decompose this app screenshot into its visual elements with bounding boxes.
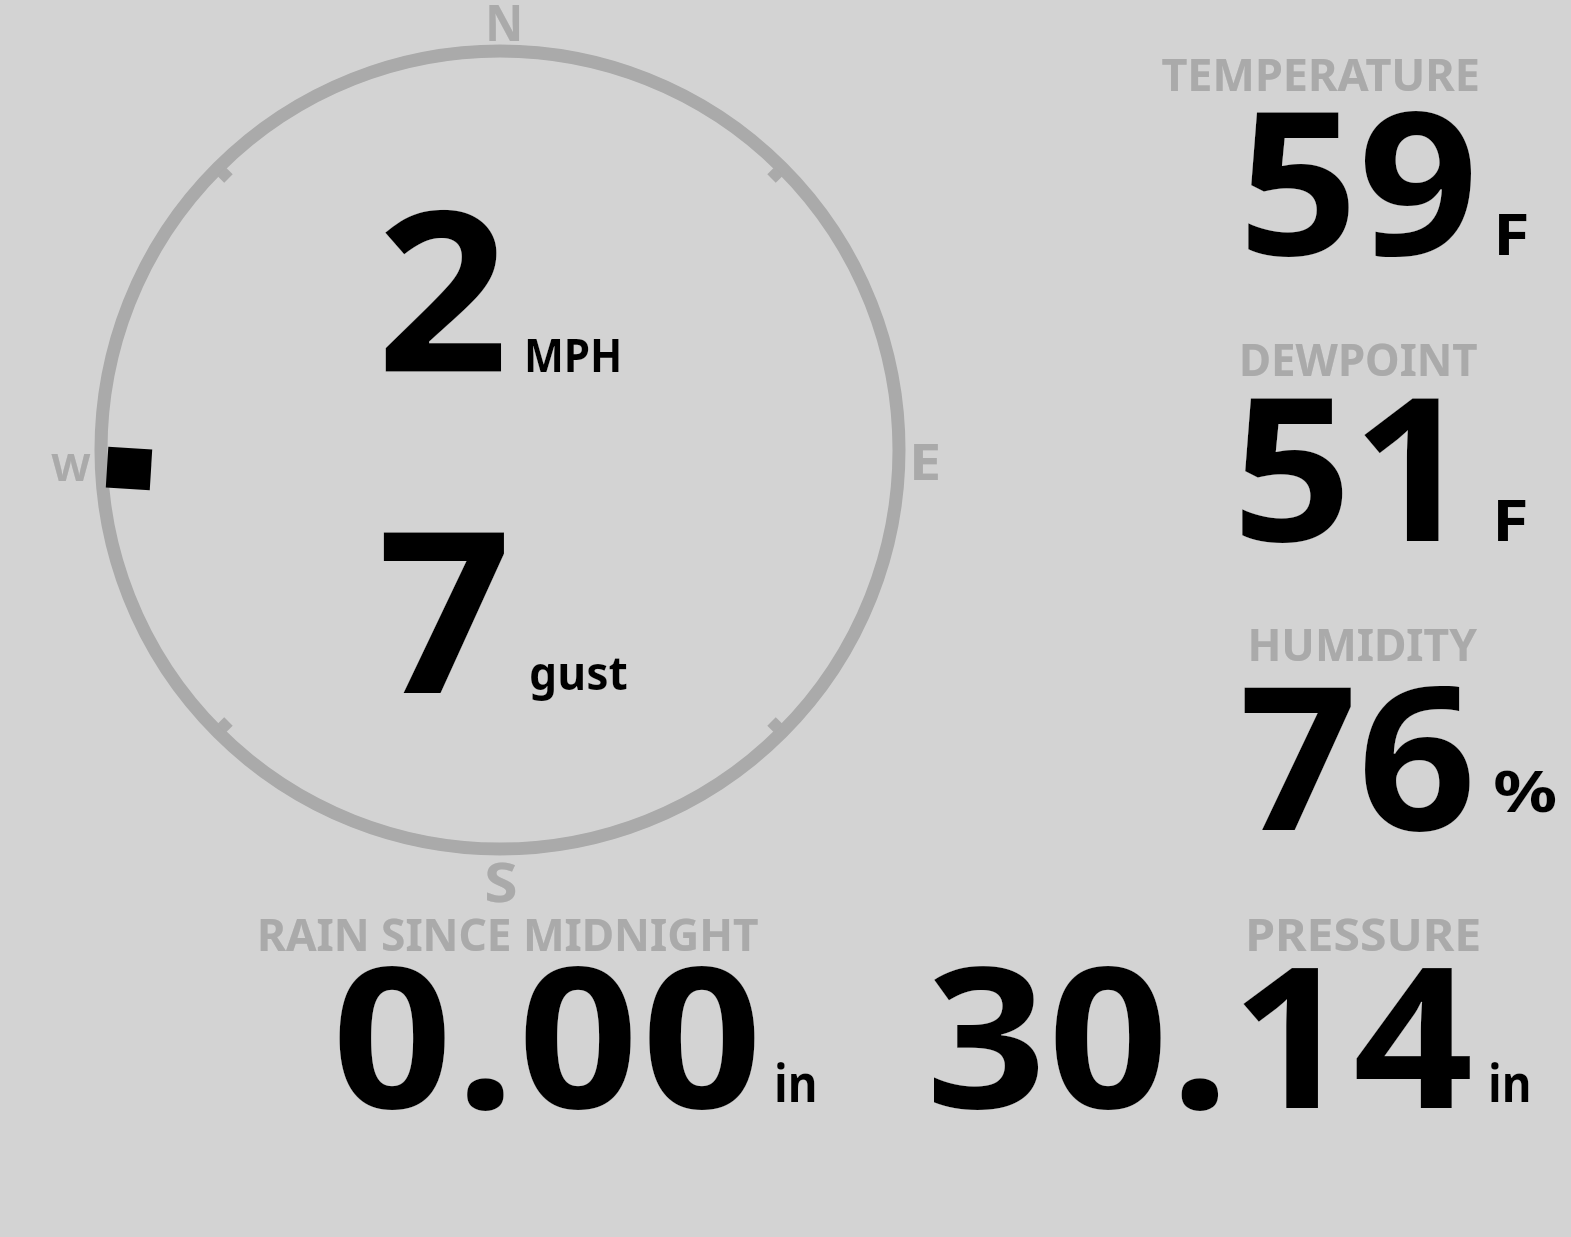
staticText: 2	[376, 133, 509, 437]
staticText: HUMIDITY	[1247, 613, 1478, 674]
staticText: F	[1492, 480, 1530, 558]
staticText: 76	[1239, 616, 1476, 888]
button[interactable]: Pressure 30.14 inches	[880, 892, 1540, 1132]
staticText: MPH	[524, 323, 623, 386]
staticText: 59	[1238, 41, 1479, 313]
staticText: PRESSURE	[1245, 903, 1482, 964]
button[interactable]: Temperature 59 degrees Fahrenheit	[1140, 30, 1571, 280]
staticText: S	[484, 844, 518, 918]
staticText: in	[1488, 1046, 1532, 1117]
staticText: TEMPERATURE	[1161, 43, 1481, 104]
staticText: %	[1493, 751, 1558, 829]
staticText: RAIN SINCE MIDNIGHT	[257, 903, 759, 964]
staticText: in	[774, 1046, 818, 1117]
staticText: 7	[377, 452, 512, 758]
staticText: E	[909, 427, 941, 495]
button[interactable]: Humidity 76 percent	[1140, 600, 1571, 850]
button[interactable]: Rain since midnight 0.00 inches	[236, 892, 836, 1132]
staticText: DEWPOINT	[1239, 328, 1478, 389]
staticText: 51	[1232, 327, 1472, 599]
staticText: 30.14	[926, 900, 1476, 1166]
button[interactable]: Wind 2 miles per hour from the west, gus…	[86, 34, 916, 866]
staticText: W	[51, 441, 90, 491]
button[interactable]: Dew point 51 degrees Fahrenheit	[1140, 316, 1571, 566]
staticText: gust	[529, 641, 629, 704]
staticText: N	[485, 0, 524, 56]
staticText: 0.00	[332, 900, 766, 1166]
staticText: F	[1493, 194, 1531, 272]
